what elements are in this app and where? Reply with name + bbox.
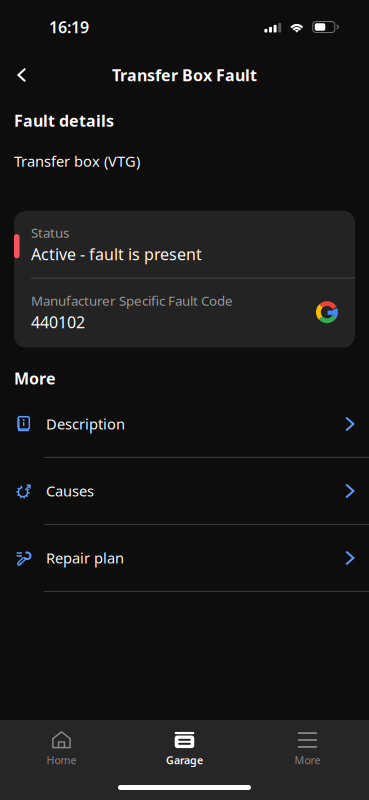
staticText: Transfer box (VTG) [14, 151, 140, 171]
staticText: 16:19 [49, 16, 89, 38]
staticText: 440102 [31, 311, 85, 333]
staticText: Causes [46, 481, 94, 501]
staticText: Fault details [14, 110, 114, 131]
staticText: Repair plan [46, 548, 124, 568]
staticText: Status [31, 224, 69, 241]
button[interactable]: Garage [123, 720, 246, 773]
button[interactable]: Back [0, 55, 61, 95]
staticText: Transfer Box Fault [112, 64, 257, 86]
button[interactable]: Repair plan [0, 525, 369, 592]
staticText: More [14, 368, 56, 389]
staticText: Active - fault is present [31, 243, 202, 265]
staticText: More [294, 753, 320, 767]
button[interactable]: Description [0, 391, 369, 458]
staticText: Home [46, 753, 76, 767]
staticText: Manufacturer Specific Fault Code [31, 292, 233, 309]
button[interactable]: Causes [0, 458, 369, 525]
button[interactable]: Home [0, 720, 123, 773]
staticText: Description [46, 414, 125, 434]
button[interactable]: More [246, 720, 369, 773]
staticText: Garage [166, 753, 203, 767]
